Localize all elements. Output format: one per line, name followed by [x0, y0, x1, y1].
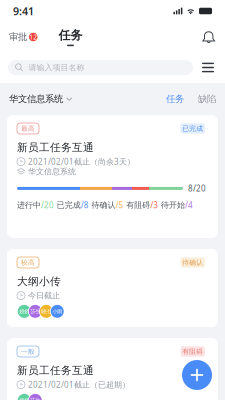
- staticText: 晓七: [41, 308, 51, 315]
- button[interactable]: 新建任务: [182, 360, 212, 390]
- staticText: 待确认: [91, 200, 115, 210]
- staticText: 华文信息系统: [28, 167, 76, 176]
- button[interactable]: 最高: [7, 115, 218, 238]
- staticText: 审批: [9, 31, 27, 43]
- button[interactable]: 审批: [9, 31, 37, 43]
- button[interactable]: 菜单: [202, 62, 214, 72]
- staticText: 请输入项目名称: [29, 63, 85, 72]
- staticText: 有阻碍: [126, 200, 150, 210]
- staticText: 较高: [21, 258, 35, 267]
- staticText: /5: [115, 200, 123, 210]
- staticText: 莎生: [30, 397, 40, 400]
- button[interactable]: 通知: [201, 30, 216, 44]
- staticText: 任务: [58, 28, 82, 42]
- staticText: 新员工任务互通: [17, 364, 94, 377]
- staticText: 今日截止: [28, 291, 60, 300]
- staticText: 娇娇: [19, 397, 29, 400]
- button[interactable]: 华文信息系统: [9, 93, 72, 105]
- staticText: 有阻碍: [182, 347, 203, 356]
- button[interactable]: 一般: [7, 338, 218, 400]
- staticText: /20: [41, 200, 54, 210]
- staticText: 任务: [166, 93, 184, 105]
- staticText: 一般: [21, 347, 35, 356]
- staticText: 已完成: [57, 200, 81, 210]
- staticText: 娇娇: [19, 308, 29, 315]
- staticText: 缺陷: [198, 93, 216, 105]
- staticText: 已完成: [182, 124, 203, 133]
- button[interactable]: 较高: [7, 249, 218, 327]
- staticText: 2021/02/01截止（已超期）: [28, 379, 130, 390]
- staticText: 莎生: [30, 308, 40, 315]
- staticText: 12: [29, 33, 37, 41]
- staticText: 2021/02/01截止（尚余3天）: [28, 156, 135, 167]
- staticText: 最高: [21, 124, 35, 133]
- staticText: 小雨: [52, 308, 62, 315]
- staticText: /8: [81, 200, 89, 210]
- button[interactable]: 缺陷: [198, 93, 216, 105]
- button[interactable]: 任务: [58, 28, 82, 46]
- staticText: /3: [150, 200, 158, 210]
- staticText: /4: [185, 200, 193, 210]
- staticText: 华文信息系统: [9, 93, 63, 105]
- staticText: 待确认: [182, 258, 203, 267]
- staticText: 大纲小传: [17, 275, 61, 288]
- staticText: 待开始: [161, 200, 185, 210]
- button[interactable]: 任务: [166, 93, 184, 105]
- staticText: 8/20: [188, 183, 206, 194]
- staticText: 新员工任务互通: [17, 141, 94, 154]
- staticText: 进行中: [17, 200, 41, 210]
- staticText: 9:41: [13, 4, 34, 18]
